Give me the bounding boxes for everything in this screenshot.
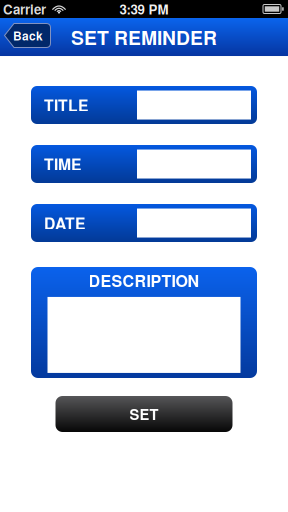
button[interactable]: SET: [55, 396, 232, 432]
staticText: DESCRIPTION: [88, 269, 199, 292]
staticText: SET: [129, 403, 158, 424]
staticText: 3:39 PM: [119, 0, 168, 19]
staticText: Carrier: [3, 0, 46, 19]
button[interactable]: Back: [4, 23, 51, 48]
staticText: TIME: [44, 153, 81, 175]
staticText: Back: [13, 27, 43, 44]
staticText: TITLE: [44, 94, 88, 116]
staticText: DATE: [44, 212, 85, 234]
staticText: SET REMINDER: [71, 23, 217, 51]
